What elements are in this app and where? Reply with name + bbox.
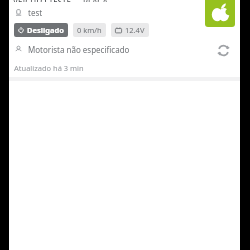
button[interactable]: Desligado [14,23,68,37]
staticText: VEÍCULO TESTE — PLACA [13,0,108,2]
staticText: Motorista não especificado [28,44,130,55]
button[interactable]: Abrir aplicativo [205,0,235,27]
button[interactable]: 12.4V [111,23,149,37]
staticText: test [28,7,43,18]
button[interactable]: VEÍCULO TESTE — PLACA [9,0,240,77]
button[interactable]: 0 km/h [73,23,106,37]
staticText: Atualizado há 3 min [14,63,84,73]
staticText: Desligado [27,25,64,35]
staticText: 0 km/h [77,25,102,35]
staticText: 12.4V [125,25,145,35]
button[interactable]: Atualizar [214,41,232,59]
